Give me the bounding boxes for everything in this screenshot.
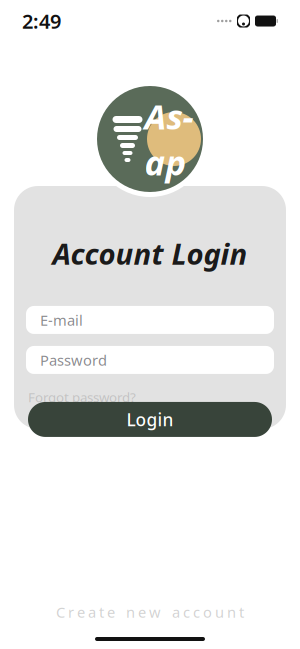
staticText: Password	[40, 350, 107, 370]
staticText: o	[203, 602, 212, 622]
staticText: r	[68, 602, 74, 622]
button[interactable]: Login	[28, 402, 272, 437]
staticText: e	[107, 602, 115, 622]
staticText: c	[183, 602, 190, 622]
staticText: c	[193, 602, 200, 622]
staticText: C	[56, 602, 65, 622]
staticText: a	[88, 602, 96, 622]
staticText: n	[227, 602, 236, 622]
staticText: Account Login	[52, 234, 247, 273]
staticText: Login	[126, 408, 173, 431]
staticText: e	[138, 602, 146, 622]
staticText: Asap	[144, 93, 193, 185]
button[interactable]: C	[16, 601, 284, 623]
button[interactable]: Forgot password?	[14, 389, 286, 405]
button[interactable]: E-mail	[26, 306, 274, 334]
button[interactable]: Password	[26, 346, 274, 374]
staticText: t	[99, 602, 104, 622]
staticText: 2:49	[22, 8, 61, 34]
staticText: e	[77, 602, 85, 622]
staticText: a	[172, 602, 180, 622]
staticText: u	[215, 602, 224, 622]
staticText: n	[126, 602, 135, 622]
staticText: Forgot password?	[28, 388, 136, 406]
staticText: E-mail	[40, 310, 83, 330]
staticText: w	[149, 602, 161, 622]
staticText: t	[239, 602, 244, 622]
